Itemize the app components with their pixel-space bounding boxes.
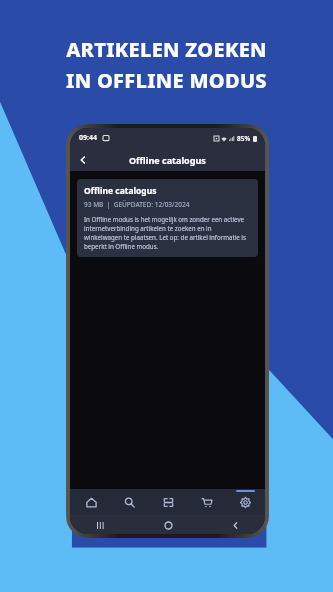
staticText: 93 MB | GEÜPDATED: 12/03/2024 xyxy=(84,200,190,209)
staticText: IN OFFLINE MODUS xyxy=(66,67,267,94)
button[interactable]: Cart xyxy=(188,489,224,515)
button[interactable]: Search xyxy=(111,489,147,515)
button[interactable]: Back xyxy=(74,151,92,169)
button[interactable]: Offline catalogus xyxy=(77,179,258,257)
staticText: In Offline modus is het mogelijk om zond… xyxy=(84,215,251,251)
staticText: Offline catalogus xyxy=(84,185,157,197)
button[interactable]: Home xyxy=(160,517,176,533)
staticText: Offline catalogus xyxy=(129,154,206,166)
button[interactable]: Home xyxy=(73,489,109,515)
button[interactable]: Settings xyxy=(227,489,263,515)
button[interactable]: Back xyxy=(227,517,243,533)
staticText: 09:44 xyxy=(79,133,97,143)
button[interactable]: Recents xyxy=(92,517,108,533)
staticText: ARTIKELEN ZOEKEN xyxy=(66,36,267,63)
button[interactable]: Scan xyxy=(150,489,186,515)
staticText: 85% xyxy=(237,134,251,143)
